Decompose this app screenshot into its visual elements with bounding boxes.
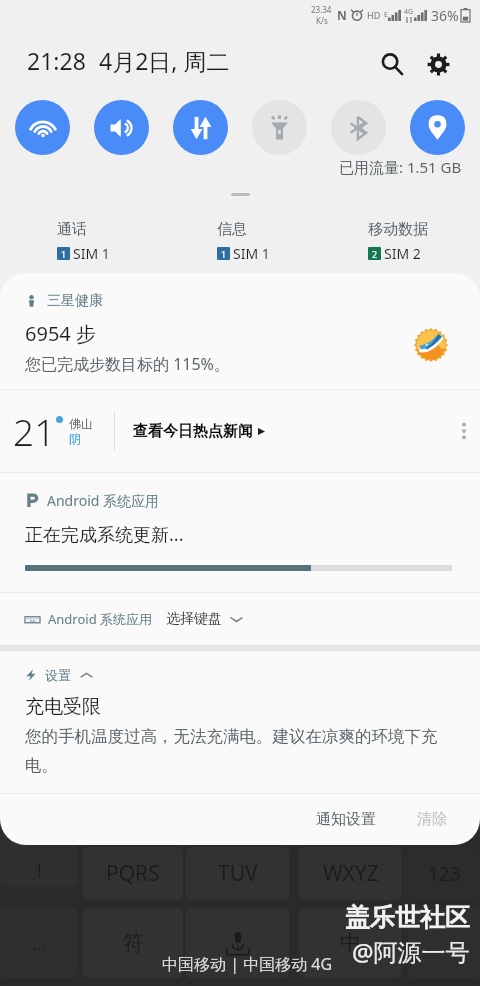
staticText: 1 — [61, 248, 67, 260]
staticText: 清除 — [417, 810, 447, 829]
staticText: 36% — [431, 6, 459, 25]
staticText: 阴 — [69, 431, 81, 446]
button[interactable]: 21 — [0, 390, 480, 472]
button[interactable]: Search — [370, 42, 414, 86]
staticText: Android 系统应用 — [48, 610, 153, 628]
staticText: WXYZ — [323, 859, 379, 888]
staticText: 查看今日热点新闻 — [133, 422, 253, 441]
staticText: K/s — [316, 15, 328, 26]
button[interactable]: 清除 — [396, 798, 480, 841]
button[interactable]: Mobile data — [173, 100, 228, 155]
staticText: 123 — [428, 861, 461, 887]
staticText: PQRS — [106, 859, 160, 888]
staticText: SIM 1 — [73, 244, 110, 263]
staticText: 充电受限 — [25, 695, 101, 719]
staticText: N — [337, 7, 347, 23]
button[interactable]: Location — [410, 100, 465, 155]
staticText: 您的手机温度过高，无法充满电。建议在凉爽的环境下充电。 — [25, 726, 445, 776]
staticText: 已用流量: 1.51 GB — [339, 157, 462, 177]
staticText: 中 — [340, 930, 361, 956]
staticText: 4G — [404, 7, 414, 17]
staticText: SIM 1 — [233, 244, 270, 263]
button[interactable]: Settings — [416, 42, 460, 86]
staticText: ! — [37, 858, 42, 883]
staticText: 中国移动 | 中国移动 4G — [162, 953, 333, 975]
button[interactable]: 信息 — [217, 220, 270, 263]
button[interactable]: Sound — [94, 100, 149, 155]
staticText: 21:28 — [27, 45, 86, 76]
staticText: TUV — [218, 859, 258, 888]
staticText: ... — [32, 932, 46, 955]
staticText: 盖乐世社区 — [345, 902, 470, 933]
staticText: 21 — [13, 406, 56, 456]
button[interactable]: Android 系统应用 — [0, 593, 480, 645]
staticText: SIM 2 — [384, 244, 421, 263]
staticText: 选择键盘 — [166, 610, 222, 628]
staticText: 4月2日, 周二 — [99, 45, 230, 76]
staticText: 通话 — [57, 220, 87, 239]
staticText: HD — [367, 9, 381, 21]
staticText: 三星健康 — [47, 292, 103, 310]
staticText: 符 — [123, 930, 144, 956]
button[interactable]: 三星健康 — [0, 273, 480, 389]
button[interactable]: 移动数据 — [368, 220, 428, 263]
staticText: 信息 — [217, 220, 247, 239]
button[interactable]: Bluetooth — [331, 100, 386, 155]
staticText: 您已完成步数目标的 115%。 — [25, 353, 230, 375]
staticText: 佛山 — [69, 416, 93, 431]
button[interactable]: More options — [451, 418, 477, 444]
staticText: 正在完成系统更新... — [25, 522, 184, 547]
staticText: 2 — [372, 248, 378, 260]
staticText: 23.34 — [311, 4, 332, 15]
staticText: @阿源一号 — [352, 935, 470, 968]
staticText: E — [384, 10, 388, 20]
staticText: 设置 — [45, 667, 71, 683]
button[interactable]: Android 系统应用 — [0, 473, 480, 592]
button[interactable]: Wi-Fi — [15, 100, 70, 155]
staticText: 移动数据 — [368, 220, 428, 239]
staticText: 6954 步 — [25, 320, 96, 347]
staticText: 1 — [221, 248, 227, 260]
button[interactable]: 通话 — [57, 220, 110, 263]
button[interactable]: 设置 — [0, 651, 480, 776]
staticText: 通知设置 — [316, 810, 376, 829]
button[interactable]: Flashlight — [252, 100, 307, 155]
button[interactable]: 通知设置 — [296, 798, 396, 841]
staticText: Android 系统应用 — [47, 491, 160, 510]
